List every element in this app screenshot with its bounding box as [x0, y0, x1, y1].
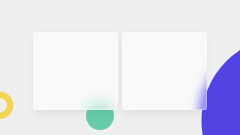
button[interactable]	[33, 32, 118, 110]
button[interactable]	[122, 32, 207, 110]
